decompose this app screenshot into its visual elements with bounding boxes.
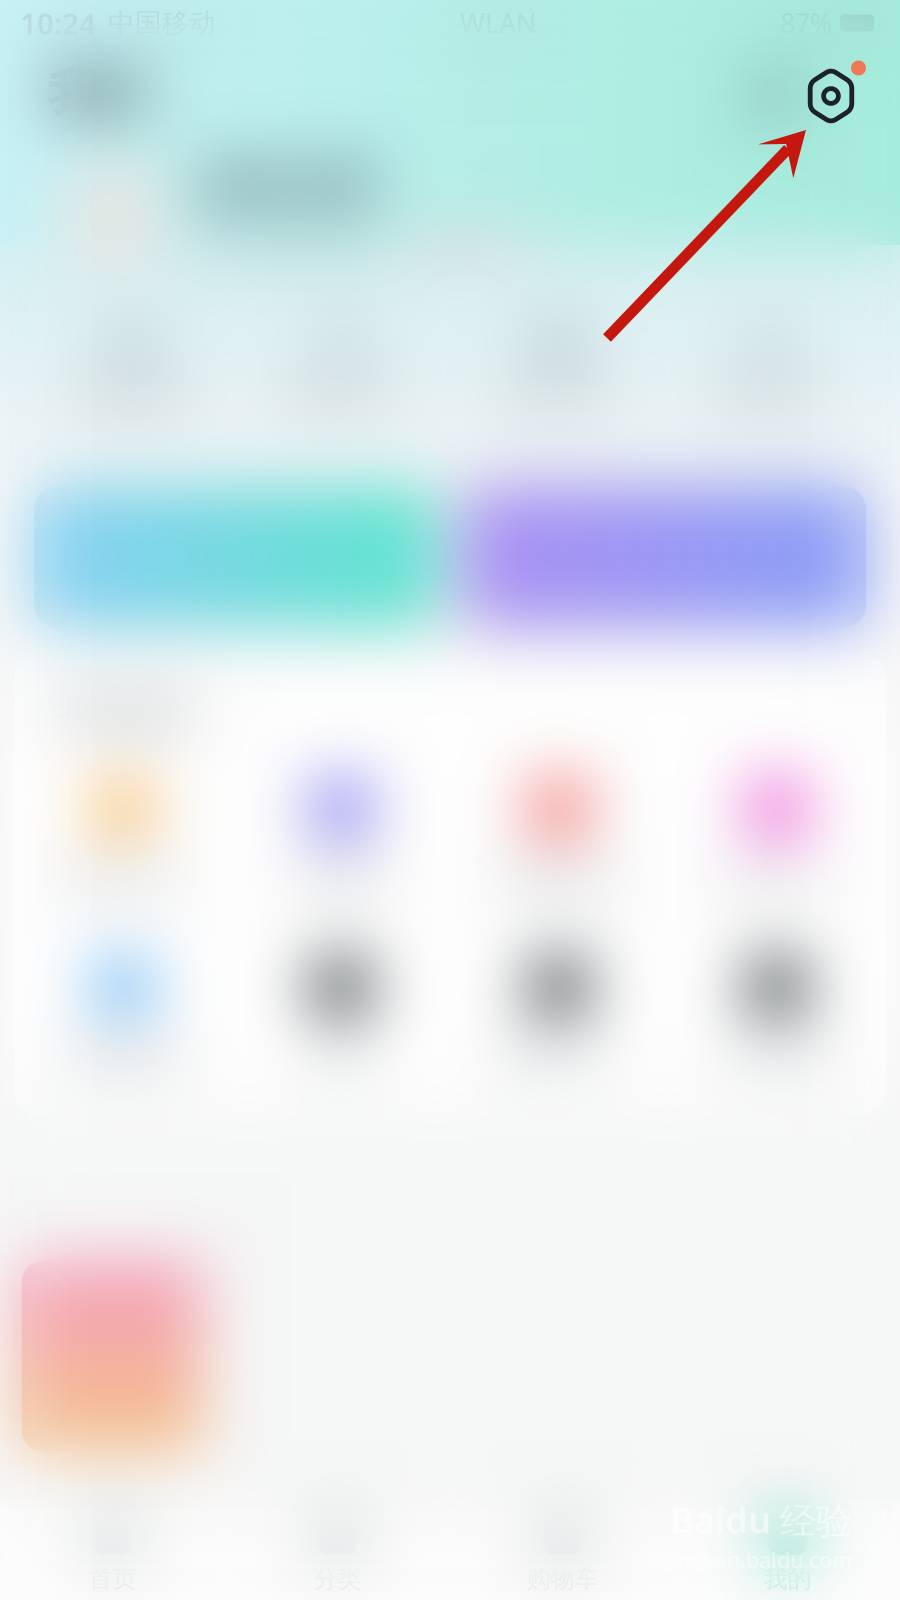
- staticText: 分类: [313, 1564, 361, 1594]
- button[interactable]: [22, 1261, 202, 1451]
- button[interactable]: 分类: [225, 1516, 450, 1594]
- button[interactable]: 会员中心: [668, 776, 886, 897]
- button[interactable]: 8: [236, 316, 450, 412]
- button[interactable]: 36: [450, 316, 664, 412]
- staticText: 中国移动: [108, 7, 216, 39]
- staticText: ID：83920174: [200, 227, 385, 265]
- staticText: 首页: [88, 1564, 136, 1594]
- staticText: jingyan.baidu.com: [666, 1546, 852, 1574]
- staticText: 我的: [763, 1564, 811, 1594]
- button[interactable]: 我的订单: [14, 776, 232, 897]
- staticText: 会员中心: [721, 862, 833, 897]
- button[interactable]: 设置: [232, 955, 450, 1075]
- button[interactable]: 首页: [0, 1516, 225, 1594]
- button[interactable]: 优惠券: [232, 776, 450, 897]
- staticText: 浏览记录: [503, 379, 611, 412]
- staticText: 优惠券: [299, 862, 383, 897]
- staticText: 设置: [313, 1041, 369, 1075]
- staticText: 我的服务: [58, 690, 198, 732]
- staticText: 我的: [48, 63, 150, 125]
- staticText: 普通会员: [417, 231, 517, 262]
- staticText: WLAN: [460, 5, 536, 41]
- staticText: 购物车: [526, 1564, 598, 1594]
- button[interactable]: 我的客服: [14, 955, 232, 1075]
- button[interactable]: 5: [664, 316, 878, 412]
- button[interactable]: [462, 486, 866, 628]
- button[interactable]: 12: [22, 316, 236, 412]
- staticText: 关于我们: [721, 1041, 833, 1075]
- staticText: 87%: [780, 5, 832, 41]
- staticText: 我的客服: [67, 1041, 179, 1075]
- button[interactable]: 购物车: [450, 1516, 675, 1594]
- button[interactable]: 我的钱包: [450, 776, 668, 897]
- button[interactable]: 关于我们: [668, 955, 886, 1075]
- staticText: 10:24: [20, 3, 96, 42]
- button[interactable]: 帮助中心: [450, 955, 668, 1075]
- staticText: 微笑向暖: [200, 161, 372, 214]
- staticText: 我的钱包: [503, 862, 615, 897]
- button[interactable]: 我的: [675, 1516, 900, 1594]
- staticText: Baidu 经验: [670, 1496, 852, 1544]
- staticText: 我的订单: [67, 862, 179, 897]
- button[interactable]: [34, 486, 438, 628]
- staticText: 帮助中心: [503, 1041, 615, 1075]
- button[interactable]: Settings: [0, 0, 900, 1600]
